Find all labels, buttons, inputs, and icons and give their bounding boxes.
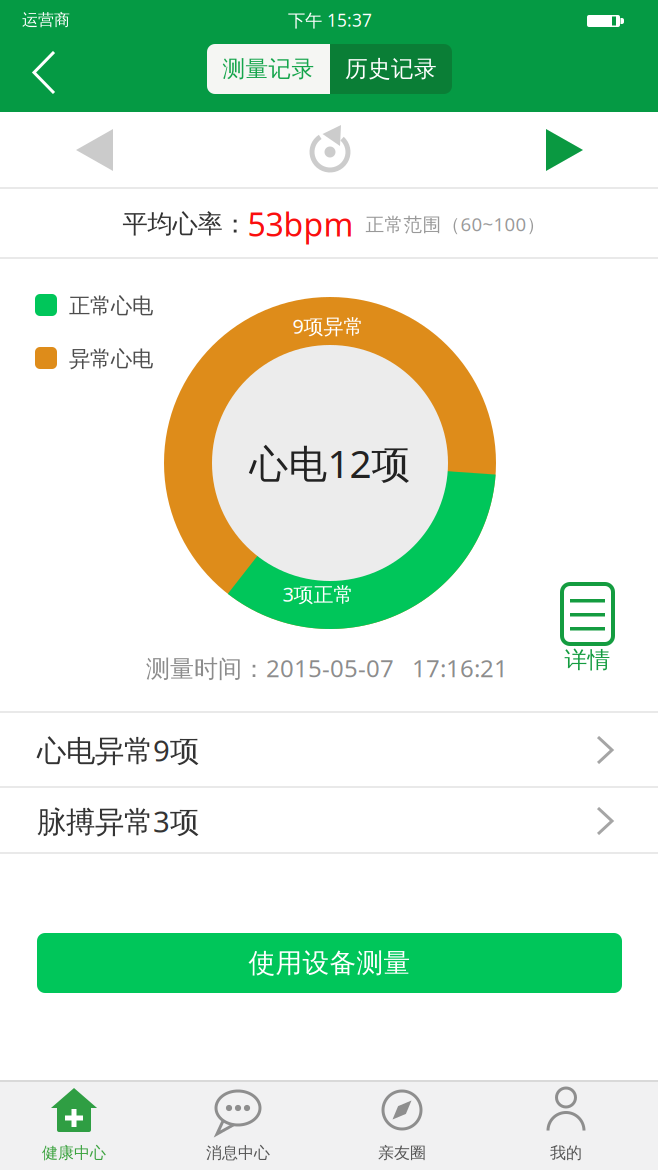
staticText: 消息中心 xyxy=(206,1143,270,1163)
button[interactable]: 消息中心 xyxy=(178,1086,298,1164)
staticText: 使用设备测量 xyxy=(248,947,410,979)
staticText: 异常心电 xyxy=(69,346,153,372)
staticText: 亲友圈 xyxy=(378,1143,426,1163)
button[interactable] xyxy=(303,125,357,179)
staticText: 正常心电 xyxy=(69,293,153,319)
button[interactable]: 我的 xyxy=(506,1086,626,1164)
staticText: 心电12项 xyxy=(249,437,410,489)
staticText: 正常范围（60~100） xyxy=(353,212,545,236)
staticText: 脉搏异常3项 xyxy=(37,801,199,840)
staticText: 9项异常 xyxy=(292,313,363,339)
staticText: 下午 15:37 xyxy=(288,8,372,31)
staticText: 测量记录 xyxy=(222,55,314,83)
button[interactable]: 亲友圈 xyxy=(342,1086,462,1164)
button[interactable]: 测量记录 xyxy=(207,44,330,94)
staticText: 详情 xyxy=(564,646,610,674)
button[interactable]: 心电异常9项 xyxy=(0,713,658,787)
button[interactable]: 使用设备测量 xyxy=(37,933,622,993)
staticText: 历史记录 xyxy=(345,55,437,83)
staticText: 我的 xyxy=(550,1143,582,1163)
staticText: 运营商 xyxy=(22,10,70,30)
button[interactable] xyxy=(29,48,59,97)
button[interactable]: 历史记录 xyxy=(330,44,452,94)
staticText: 平均心率： xyxy=(122,208,247,239)
button[interactable]: 脉搏异常3项 xyxy=(0,788,658,853)
button[interactable] xyxy=(545,128,584,171)
button[interactable]: 详情 xyxy=(561,583,614,673)
button[interactable]: 健康中心 xyxy=(14,1086,134,1164)
staticText: 3项正常 xyxy=(282,581,353,607)
staticText: 53bpm xyxy=(247,203,353,245)
staticText: 测量时间：2015-05-07 17:16:21 xyxy=(146,652,508,684)
staticText: 心电异常9项 xyxy=(37,730,199,769)
staticText: 健康中心 xyxy=(42,1143,106,1163)
button[interactable] xyxy=(75,128,114,171)
